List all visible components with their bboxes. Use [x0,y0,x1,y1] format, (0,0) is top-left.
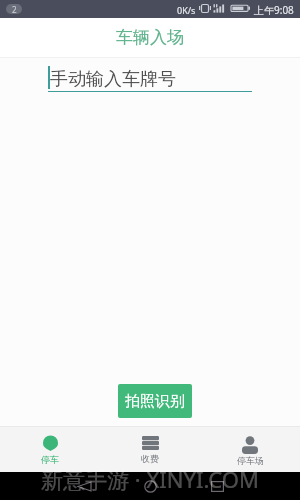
staticText: 2 [12,4,17,14]
staticText: 0K/s [177,4,196,16]
staticText: 上午9:08 [254,3,294,17]
button[interactable]: 停车场 [200,427,300,472]
staticText: 拍照识别 [125,392,185,411]
staticText: 新意手游 · XINYI.COM [0,464,300,494]
button[interactable]: Back [78,482,91,491]
staticText: 收费 [141,453,159,464]
staticText: 车辆入场 [116,27,184,48]
button[interactable]: Recent apps [211,481,224,492]
staticText: 停车 [41,454,59,465]
button[interactable]: Home [144,480,157,493]
staticText: 停车场 [237,455,264,466]
button[interactable]: 拍照识别 [118,384,192,418]
button[interactable]: 停车 [0,427,100,472]
button[interactable]: 收费 [100,427,200,472]
staticText: 手动输入车牌号 [50,68,176,91]
